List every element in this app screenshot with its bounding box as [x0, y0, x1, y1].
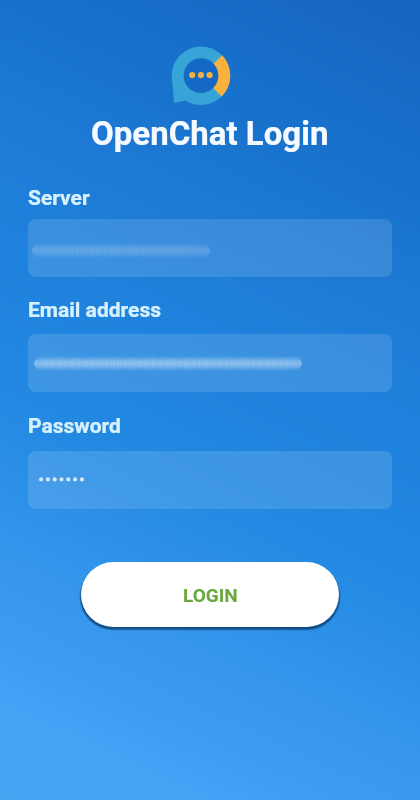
staticText: OpenChat Login — [91, 114, 329, 153]
button[interactable] — [28, 219, 392, 277]
button[interactable]: LOGIN — [81, 562, 339, 627]
staticText: Email address — [28, 298, 162, 323]
staticText: Password — [28, 414, 121, 439]
button[interactable] — [28, 451, 392, 509]
other: OpenChat logo — [170, 44, 232, 106]
staticText: Server — [28, 186, 90, 211]
staticText: LOGIN — [183, 584, 238, 606]
button[interactable] — [28, 334, 392, 392]
